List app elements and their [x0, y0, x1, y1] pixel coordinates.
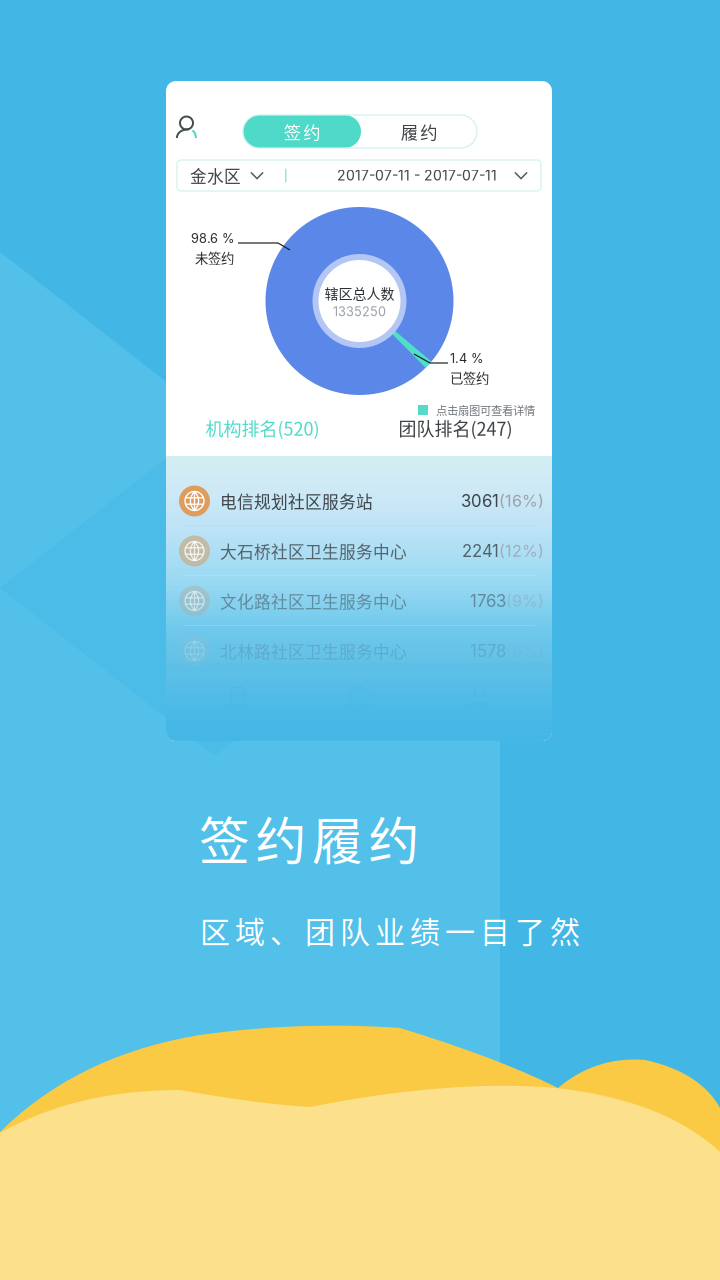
staticText: 辖区总人数	[324, 283, 394, 303]
button[interactable]: 团队排名(247)	[359, 406, 552, 450]
staticText: 1335250	[333, 304, 386, 319]
staticText: (16%)	[499, 491, 544, 511]
button[interactable]: 签约	[243, 115, 361, 148]
button[interactable]: 签约	[179, 672, 299, 722]
button[interactable]: 我的	[419, 672, 539, 722]
staticText: 点击扇图可查看详情	[436, 402, 535, 418]
staticText: 区域、团队业绩一目了然	[200, 908, 580, 952]
button[interactable]: 文化路社区卫生服务中心	[166, 576, 552, 626]
staticText: 未签约	[195, 248, 234, 267]
staticText: (8%)	[506, 641, 544, 661]
staticText: 3061	[461, 491, 499, 511]
staticText: 1.4 %	[450, 351, 483, 366]
button[interactable]: 履约	[361, 115, 477, 148]
staticText: 机构排名(520)	[205, 415, 319, 441]
staticText: 金水区	[190, 163, 241, 187]
button[interactable]: 机构排名(520)	[166, 406, 359, 450]
staticText: 签约	[284, 119, 320, 144]
staticText: 2241	[462, 541, 499, 561]
staticText: 1763	[470, 591, 506, 611]
staticText: 文化路社区卫生服务中心	[220, 589, 407, 613]
button[interactable]: 大石桥社区卫生服务中心	[166, 526, 552, 576]
staticText: 电信规划社区服务站	[220, 489, 373, 513]
staticText: 团队排名(247)	[398, 415, 512, 441]
staticText: 履约	[401, 119, 437, 144]
staticText: 北林路社区卫生服务中心	[220, 639, 407, 663]
staticText: (9%)	[506, 591, 544, 611]
staticText: 大石桥社区卫生服务中心	[220, 539, 407, 563]
button[interactable]: 电信规划社区服务站	[166, 476, 552, 526]
button[interactable]: 北林路社区卫生服务中心	[166, 626, 552, 676]
button[interactable]: 2017-07-11 - 2017-07-11	[337, 160, 541, 191]
button[interactable]: Profile	[176, 111, 197, 139]
staticText: 签约履约	[199, 801, 419, 875]
staticText: 1578	[470, 641, 506, 661]
staticText: (12%)	[499, 541, 544, 561]
staticText: 已签约	[450, 368, 489, 387]
button[interactable]: 服务	[299, 672, 419, 722]
button[interactable]: 金水区	[177, 160, 264, 191]
staticText: 2017-07-11 - 2017-07-11	[337, 167, 497, 184]
staticText: 98.6 %	[191, 231, 234, 246]
